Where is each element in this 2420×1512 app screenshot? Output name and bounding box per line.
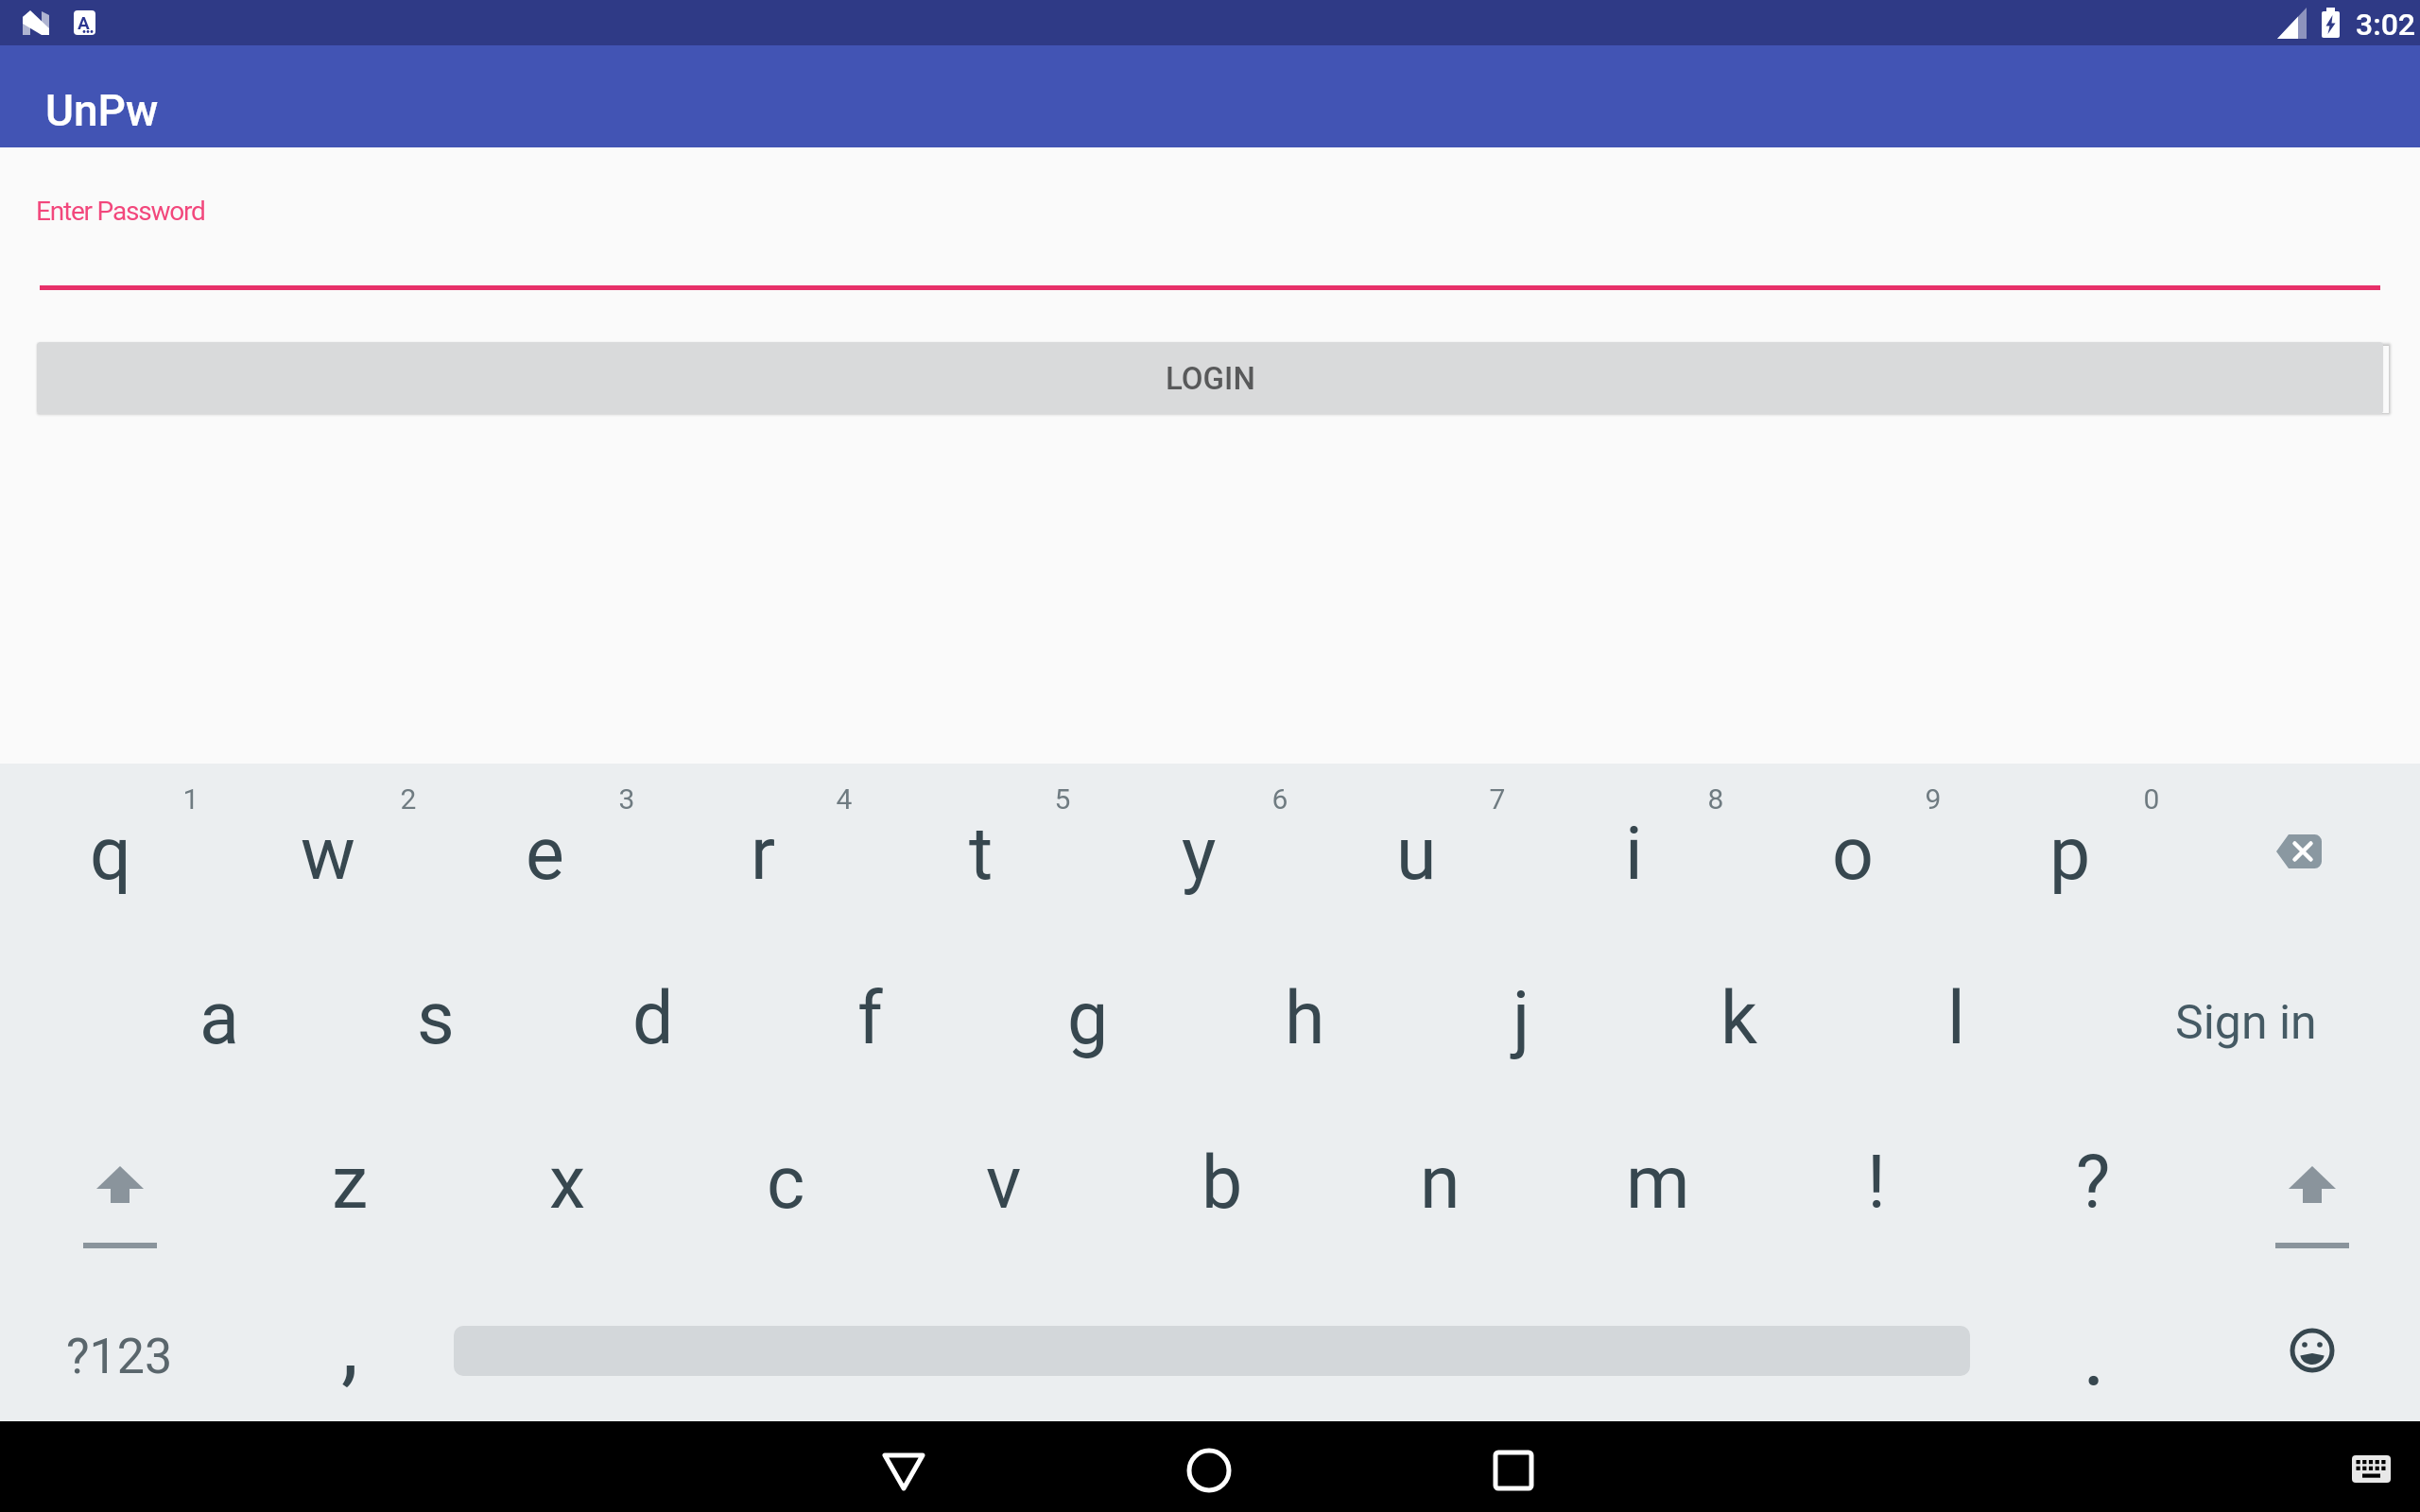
button[interactable]: g: [977, 936, 1198, 1101]
staticText: f: [857, 976, 883, 1061]
button[interactable]: ?123: [9, 1274, 230, 1438]
button[interactable]: c: [676, 1101, 896, 1265]
button[interactable]: s: [325, 936, 545, 1101]
button[interactable]: ?: [1983, 1101, 2204, 1265]
button[interactable]: [9, 1092, 229, 1257]
staticText: y: [1182, 812, 1217, 897]
staticText: t: [969, 812, 994, 897]
button[interactable]: l: [1846, 936, 2066, 1101]
staticText: s: [417, 976, 455, 1061]
staticText: o: [1832, 812, 1874, 897]
staticText: 4: [830, 782, 858, 816]
button[interactable]: e: [435, 772, 655, 936]
staticText: b: [1201, 1141, 1243, 1226]
button[interactable]: i: [1524, 772, 1744, 936]
button[interactable]: h: [1195, 936, 1415, 1101]
staticText: ?: [2076, 1141, 2111, 1226]
staticText: i: [1625, 812, 1643, 897]
staticText: z: [332, 1141, 369, 1226]
button[interactable]: z: [240, 1101, 460, 1265]
staticText: 8: [1702, 782, 1730, 816]
staticText: u: [1396, 812, 1437, 897]
button[interactable]: f: [760, 936, 980, 1101]
staticText: j: [1512, 976, 1530, 1061]
staticText: Enter Password: [36, 196, 205, 227]
staticText: 3:02: [2356, 7, 2416, 43]
button[interactable]: v: [893, 1101, 1114, 1265]
staticText: r: [751, 812, 776, 897]
button[interactable]: [2191, 764, 2411, 928]
button[interactable]: Sign in: [2135, 940, 2356, 1105]
button[interactable]: j: [1411, 936, 1632, 1101]
button[interactable]: a: [109, 936, 329, 1101]
staticText: p: [2049, 812, 2091, 897]
button[interactable]: t: [871, 772, 1091, 936]
button[interactable]: y: [1089, 772, 1309, 936]
button[interactable]: o: [1742, 772, 1962, 936]
button[interactable]: [1175, 1433, 1243, 1501]
staticText: v: [986, 1141, 1022, 1226]
staticText: d: [632, 976, 674, 1061]
button[interactable]: LOGIN: [37, 342, 2383, 414]
staticText: g: [1067, 976, 1109, 1061]
button[interactable]: d: [543, 936, 763, 1101]
staticText: A: [78, 12, 90, 33]
button[interactable]: [1479, 1433, 1547, 1501]
button[interactable]: [40, 285, 2380, 290]
button[interactable]: !: [1766, 1101, 1986, 1265]
staticText: Sign in: [2175, 995, 2317, 1051]
staticText: !: [1867, 1141, 1886, 1226]
button[interactable]: [2191, 1257, 2411, 1421]
button[interactable]: [2344, 1444, 2397, 1489]
button[interactable]: [2191, 1092, 2411, 1257]
staticText: ,: [341, 1295, 359, 1397]
button[interactable]: r: [653, 772, 873, 936]
button[interactable]: k: [1629, 936, 1849, 1101]
staticText: e: [526, 812, 564, 897]
button[interactable]: [870, 1433, 938, 1501]
staticText: q: [90, 812, 131, 897]
staticText: 1: [177, 782, 205, 816]
button[interactable]: x: [458, 1101, 678, 1265]
staticText: m: [1626, 1141, 1690, 1226]
staticText: l: [1947, 976, 1965, 1061]
staticText: w: [301, 812, 355, 897]
staticText: 6: [1266, 782, 1294, 816]
button[interactable]: ,: [240, 1263, 460, 1428]
staticText: k: [1720, 976, 1758, 1061]
button[interactable]: .: [1984, 1273, 2204, 1437]
button[interactable]: p: [1960, 772, 2180, 936]
button[interactable]: q: [0, 772, 220, 936]
button[interactable]: m: [1547, 1101, 1768, 1265]
button[interactable]: w: [217, 772, 438, 936]
staticText: 7: [1483, 782, 1512, 816]
staticText: 9: [1919, 782, 1947, 816]
staticText: h: [1285, 976, 1325, 1061]
staticText: 5: [1048, 782, 1077, 816]
button[interactable]: n: [1330, 1101, 1550, 1265]
staticText: x: [549, 1141, 586, 1226]
staticText: LOGIN: [1166, 360, 1255, 397]
staticText: 2: [394, 782, 423, 816]
staticText: 3: [613, 782, 641, 816]
staticText: 0: [2137, 782, 2166, 816]
staticText: n: [1420, 1141, 1461, 1226]
staticText: a: [199, 976, 239, 1061]
staticText: c: [767, 1141, 805, 1226]
staticText: ?123: [66, 1328, 173, 1385]
button[interactable]: u: [1306, 772, 1527, 936]
button[interactable]: b: [1112, 1101, 1332, 1265]
staticText: .: [2083, 1304, 2106, 1406]
staticText: UnPw: [45, 85, 159, 136]
